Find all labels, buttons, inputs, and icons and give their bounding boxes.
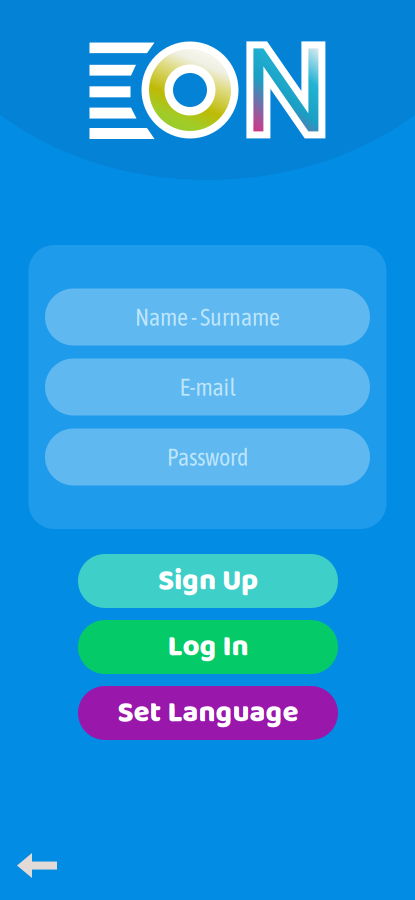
staticText: Sign Up [158,557,258,604]
staticText: Log In [167,623,248,670]
staticText: Name - Surname [135,303,280,331]
button[interactable]: E-mail [45,358,370,415]
button[interactable]: Back [17,853,57,878]
staticText: E-mail [179,373,235,401]
button[interactable]: Sign Up [78,554,338,608]
staticText: Set Language [117,689,298,736]
button[interactable]: Log In [78,620,338,674]
staticText: Password [167,443,248,471]
button[interactable]: Password [45,428,370,485]
button[interactable]: Set Language [78,686,338,740]
button[interactable]: Name - Surname [45,288,370,345]
